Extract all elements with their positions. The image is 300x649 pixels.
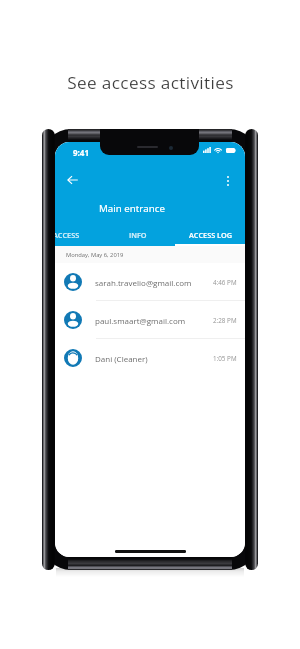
staticText: ACCESS LOG [189,230,233,240]
staticText: 9:41 [73,147,90,158]
staticText: Main entrance [99,202,165,215]
button[interactable]: ACCESS LOG [175,224,245,246]
staticText: Monday, May 6, 2019 [66,251,124,259]
staticText: INFO [129,230,147,240]
staticText: ACCESS [55,230,80,240]
staticText: 4:46 PM [213,278,237,287]
staticText: paul.smaart@gmail.com [95,315,186,326]
staticText: Dani (Cleaner) [95,353,148,364]
staticText: 2:28 PM [213,316,237,325]
button[interactable]: Dani (Cleaner) [55,339,245,377]
button[interactable]: paul.smaart@gmail.com [55,301,245,339]
button[interactable]: Back [61,168,84,191]
button[interactable]: ACCESS [55,224,102,246]
button[interactable]: More options [216,169,239,192]
staticText: 1:05 PM [213,354,237,363]
staticText: See access activities [67,71,234,89]
button[interactable]: INFO [102,224,174,246]
button[interactable]: sarah.travelio@gmail.com [55,263,245,301]
staticText: sarah.travelio@gmail.com [95,277,192,288]
